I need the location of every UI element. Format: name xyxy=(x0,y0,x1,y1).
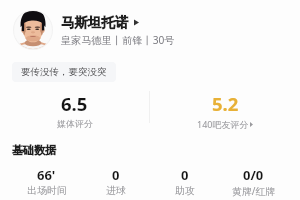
button[interactable]: 0 xyxy=(150,166,219,196)
staticText: 5.2 xyxy=(212,91,239,116)
staticText: 马斯坦托诺 xyxy=(61,14,129,31)
staticText: 66' xyxy=(37,166,56,184)
staticText: 基础数据 xyxy=(12,143,56,157)
staticText: 0 xyxy=(112,166,120,184)
staticText: 140吧友评分 xyxy=(197,118,249,130)
staticText: 皇家马德里丨前锋丨30号 xyxy=(61,33,175,47)
staticText: 0/0 xyxy=(243,166,264,184)
button[interactable]: 0 xyxy=(81,166,150,196)
staticText: 进球 xyxy=(106,184,126,196)
staticText: 助攻 xyxy=(175,184,195,196)
button[interactable]: 66' xyxy=(12,166,81,196)
staticText: 黄牌/红牌 xyxy=(232,184,276,198)
staticText: 要传没传，要突没突 xyxy=(21,66,107,78)
button[interactable]: 6.5 xyxy=(0,91,149,131)
staticText: 6.5 xyxy=(61,91,88,116)
button[interactable]: 5.2 xyxy=(150,91,300,131)
staticText: 媒体评分 xyxy=(57,118,93,129)
button[interactable]: 0/0 xyxy=(219,166,288,198)
button[interactable]: 要传没传，要突没突 xyxy=(12,62,116,82)
staticText: 出场时间 xyxy=(27,184,67,196)
button[interactable]: Player photo xyxy=(13,10,53,50)
staticText: 0 xyxy=(181,166,189,184)
